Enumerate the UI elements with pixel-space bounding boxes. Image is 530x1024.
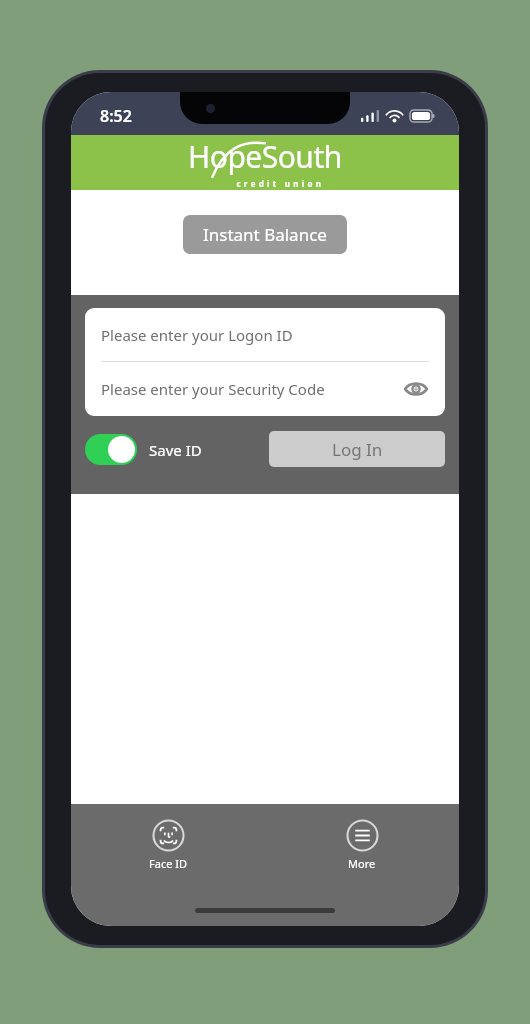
button[interactable]: Face ID bbox=[139, 816, 197, 873]
staticText: Face ID bbox=[149, 856, 187, 871]
button[interactable]: Please enter your Security Code bbox=[85, 362, 445, 416]
button[interactable]: Log In bbox=[269, 431, 445, 467]
button[interactable]: Show security code bbox=[401, 374, 431, 404]
staticText: Please enter your Security Code bbox=[101, 379, 325, 399]
staticText: HopeSouth bbox=[188, 136, 342, 177]
staticText: Instant Balance bbox=[203, 223, 327, 246]
button[interactable]: Save ID bbox=[85, 434, 202, 465]
staticText: 8:52 bbox=[100, 105, 132, 127]
staticText: Save ID bbox=[149, 440, 202, 460]
staticText: c r e d i t u n i o n bbox=[236, 178, 322, 189]
button[interactable]: Instant Balance bbox=[183, 215, 347, 254]
staticText: Please enter your Logon ID bbox=[101, 325, 293, 345]
button[interactable]: More bbox=[335, 816, 389, 873]
button[interactable]: Please enter your Logon ID bbox=[85, 308, 445, 361]
staticText: More bbox=[348, 856, 376, 871]
staticText: Log In bbox=[332, 438, 383, 461]
